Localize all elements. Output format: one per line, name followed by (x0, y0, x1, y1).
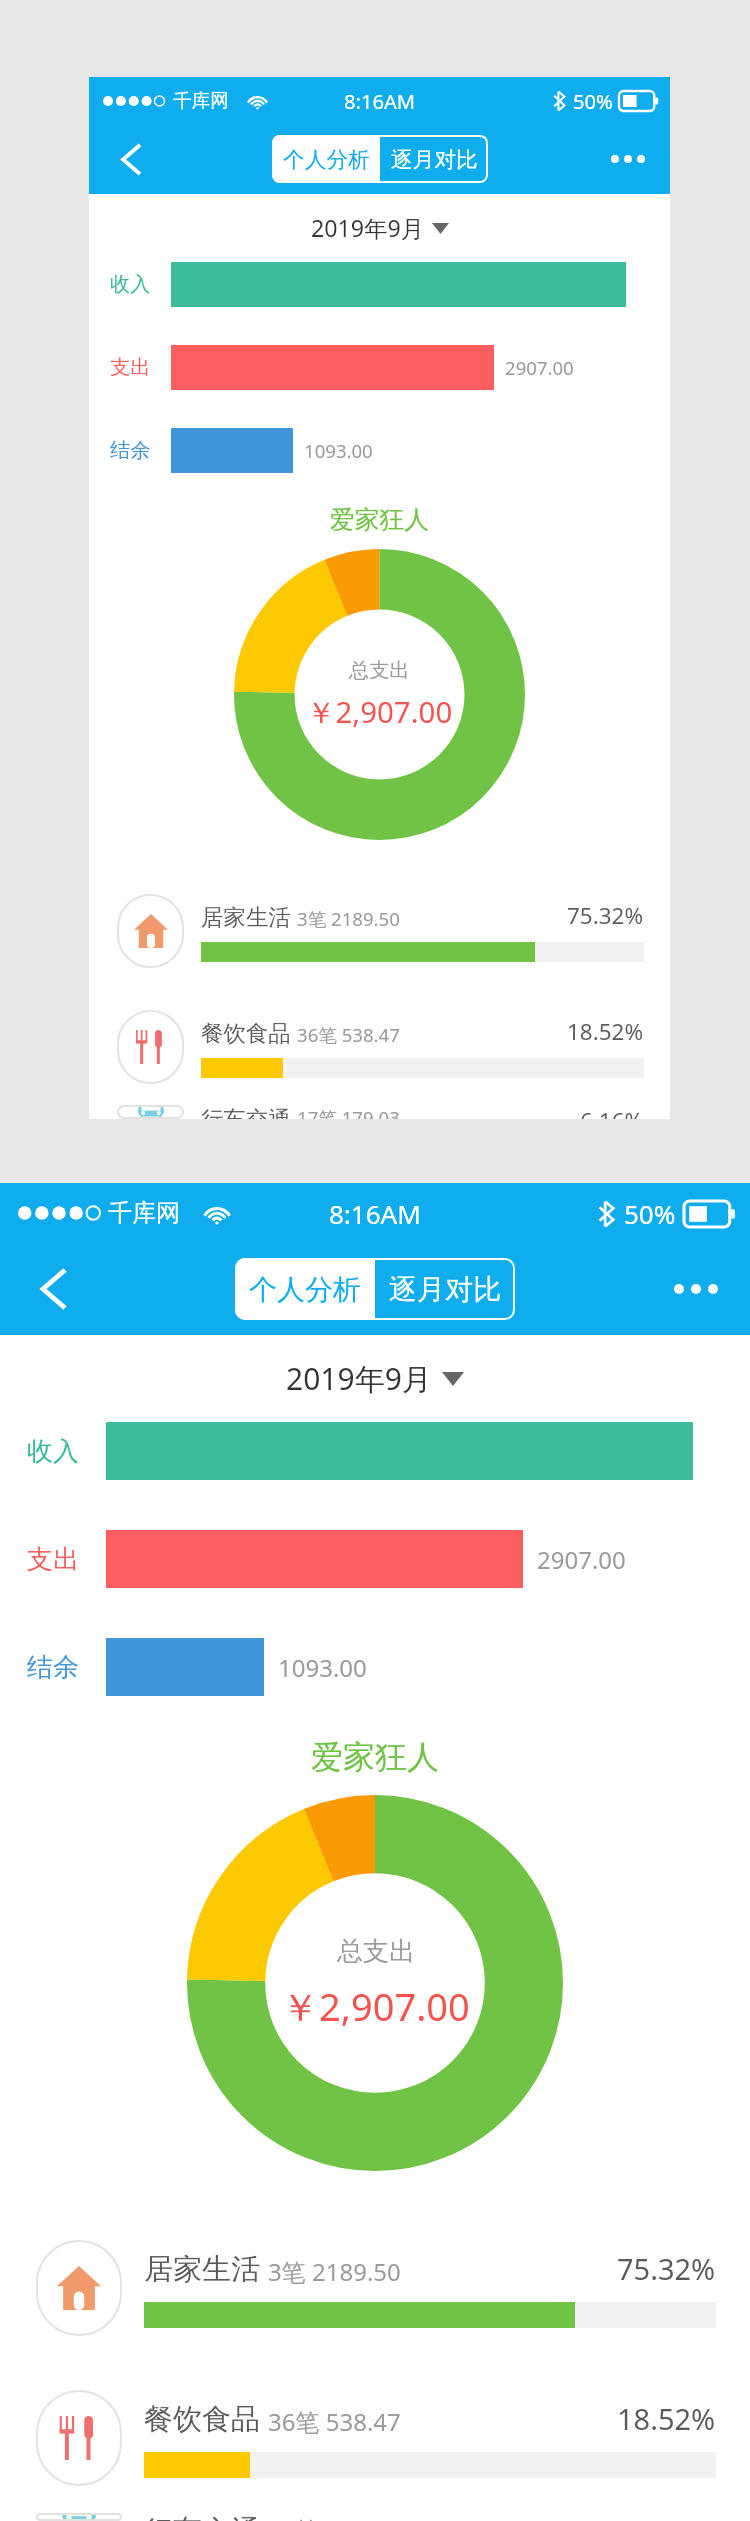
staticText: 行车交通 (201, 1105, 291, 1119)
staticText: 居家生活 (144, 2251, 260, 2288)
button[interactable]: More options (666, 1259, 726, 1319)
staticText: 行车交通 (144, 2513, 260, 2521)
button[interactable]: 支出 (89, 344, 670, 390)
staticText: 逐月对比 (391, 146, 478, 173)
staticText: 总支出 (349, 658, 410, 683)
button[interactable]: 居家生活 (117, 873, 644, 989)
staticText: 支出 (27, 1543, 79, 1576)
button[interactable]: 个人分析 (272, 135, 380, 183)
button[interactable]: 2019年9月 (286, 1358, 464, 1399)
staticText: 2907.00 (537, 1543, 626, 1576)
staticText: 1093.00 (304, 438, 373, 463)
staticText: 75.32% (567, 900, 644, 931)
staticText: 18.52% (567, 1016, 644, 1047)
button[interactable]: 餐饮食品 (117, 989, 644, 1105)
staticText: 50% (624, 1196, 676, 1231)
staticText: 个人分析 (283, 146, 370, 173)
button[interactable]: 个人分析 (235, 1258, 375, 1320)
staticText: 收入 (110, 272, 151, 297)
button[interactable]: 行车交通 (36, 2513, 716, 2521)
staticText: 36笔 538.47 (297, 1022, 400, 1047)
staticText: 餐饮食品 (144, 2401, 260, 2438)
button[interactable]: 收入 (89, 261, 670, 307)
staticText: 3笔 2189.50 (297, 906, 400, 931)
staticText: 17笔 179.03 (297, 1105, 400, 1119)
button[interactable]: Back (24, 1259, 84, 1319)
staticText: 居家生活 (201, 903, 291, 931)
staticText: 1093.00 (278, 1651, 367, 1684)
button[interactable]: Back (108, 136, 154, 182)
staticText: 2019年9月 (286, 1358, 432, 1399)
staticText: 总支出 (337, 1935, 415, 1968)
button[interactable]: 居家生活 (36, 2213, 716, 2363)
staticText: 6.16% (580, 1105, 644, 1119)
staticText: 逐月对比 (389, 1272, 501, 1307)
button[interactable]: 逐月对比 (380, 135, 488, 183)
staticText: 8:16AM (344, 87, 416, 114)
staticText: 36笔 538.47 (268, 2405, 401, 2438)
staticText: 千库网 (173, 89, 229, 112)
staticText: 3笔 2189.50 (268, 2255, 401, 2288)
button[interactable]: 行车交通 (117, 1105, 644, 1119)
staticText: 个人分析 (249, 1272, 361, 1307)
staticText: 结余 (27, 1651, 79, 1684)
staticText: 收入 (27, 1435, 79, 1468)
staticText: 支出 (110, 355, 151, 380)
staticText: 2019年9月 (311, 212, 424, 244)
staticText: 75.32% (617, 2249, 716, 2288)
button[interactable]: 2019年9月 (311, 212, 449, 244)
staticText: 千库网 (108, 1198, 180, 1228)
button[interactable]: 逐月对比 (375, 1258, 515, 1320)
button[interactable]: 结余 (89, 427, 670, 473)
staticText: 8:16AM (329, 1196, 421, 1231)
staticText: ￥2,907.00 (281, 1980, 470, 2032)
staticText: 17笔 179.03 (268, 2513, 401, 2521)
staticText: 结余 (110, 438, 151, 463)
staticText: ￥2,907.00 (306, 692, 453, 732)
button[interactable]: 餐饮食品 (36, 2363, 716, 2513)
staticText: 50% (573, 87, 613, 114)
staticText: 2907.00 (505, 355, 574, 380)
staticText: 18.52% (617, 2399, 716, 2438)
button[interactable]: 结余 (0, 1637, 750, 1697)
button[interactable]: More options (605, 136, 651, 182)
staticText: 爱家狂人 (311, 1737, 439, 1777)
staticText: 爱家狂人 (330, 504, 430, 535)
button[interactable]: 支出 (0, 1529, 750, 1589)
button[interactable]: 收入 (0, 1421, 750, 1481)
staticText: 餐饮食品 (201, 1019, 291, 1047)
